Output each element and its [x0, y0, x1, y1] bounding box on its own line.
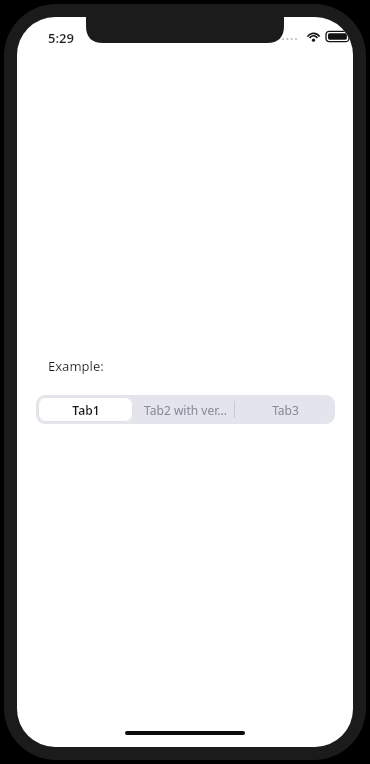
staticText: Tab2 with ver... — [144, 402, 227, 418]
other: Home indicator — [125, 731, 245, 735]
button[interactable]: Tab3 — [235, 395, 335, 424]
button[interactable]: Tab1 — [38, 397, 133, 422]
button[interactable]: Tab2 with ver... — [135, 395, 235, 424]
staticText: Example: — [48, 357, 104, 375]
staticText: 5:29 — [48, 29, 74, 47]
staticText: Tab3 — [272, 402, 299, 418]
staticText: Tab1 — [72, 402, 100, 418]
